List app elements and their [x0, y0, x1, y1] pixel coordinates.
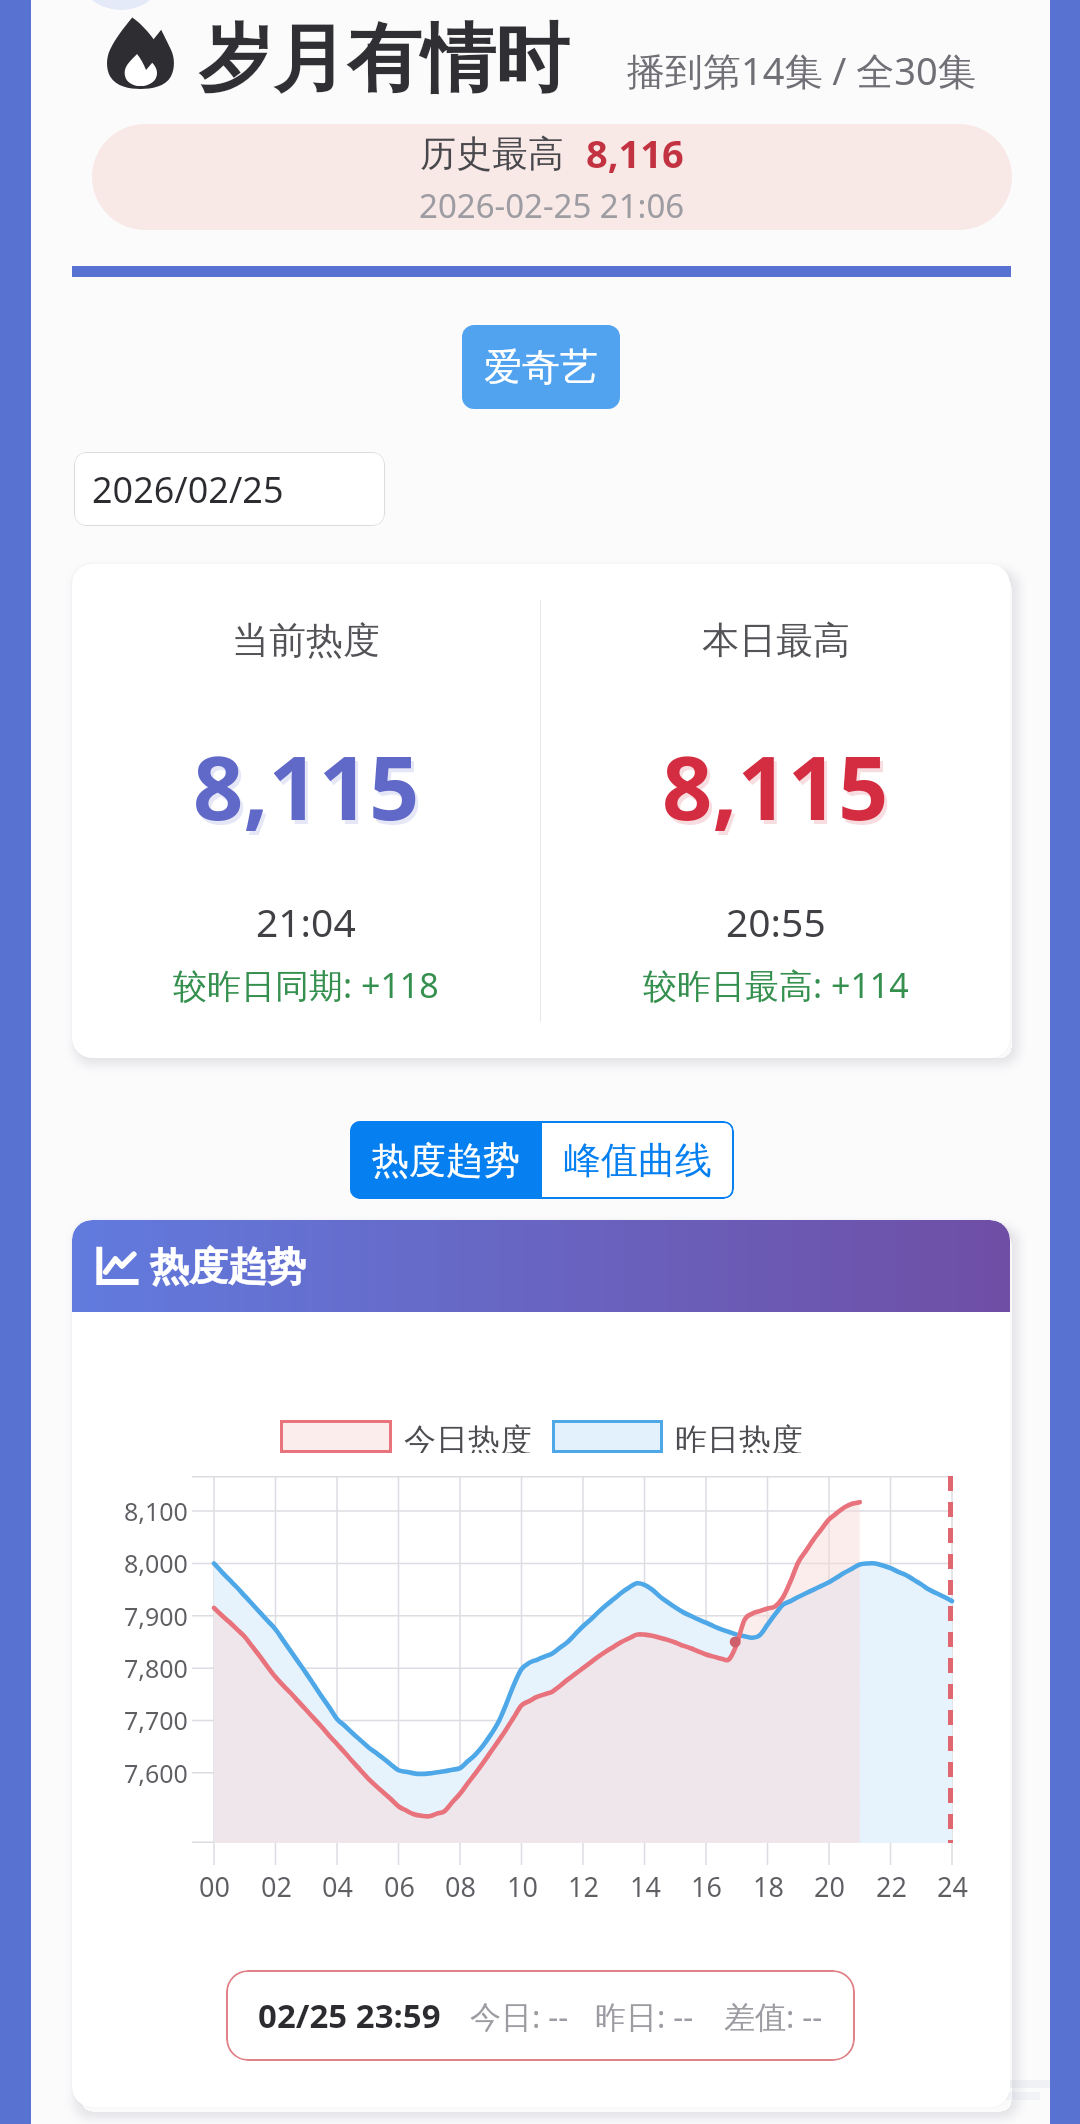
staticText: 20	[814, 1868, 845, 1904]
button[interactable]: 昨日热度	[552, 1420, 803, 1453]
staticText: 18	[753, 1868, 784, 1904]
button[interactable]: 今日热度	[280, 1420, 532, 1453]
staticText: 20:55	[726, 895, 826, 948]
staticText: 7,600	[124, 1756, 188, 1790]
staticText: 当前热度	[232, 617, 380, 664]
staticText: 00	[199, 1868, 230, 1904]
staticText: 8,115	[193, 726, 420, 846]
staticText: 岁月有情时	[199, 13, 569, 106]
other: 热度	[106, 16, 175, 89]
staticText: 差值: --	[724, 1995, 823, 2037]
staticText: 7,900	[124, 1599, 188, 1633]
button[interactable]: 本日最高	[541, 564, 1010, 1058]
staticText: 02	[261, 1868, 292, 1904]
staticText: 本日最高	[702, 617, 850, 664]
staticText: 16	[691, 1868, 722, 1904]
staticText: 昨日: --	[595, 1995, 694, 2037]
staticText: 昨日热度	[675, 1420, 803, 1453]
staticText: 热度趋势	[372, 1137, 520, 1184]
button[interactable]: 当前热度	[72, 564, 540, 1058]
staticText: 较昨日同期: +118	[173, 962, 439, 1008]
staticText: 7,700	[124, 1703, 188, 1737]
staticText: 24	[937, 1868, 968, 1904]
staticText: 爱奇艺	[484, 343, 598, 391]
staticText: 今日: --	[470, 1995, 569, 2037]
staticText: 08	[445, 1868, 476, 1904]
staticText: 8,115	[662, 726, 889, 846]
staticText: 8,116	[586, 127, 684, 179]
other: 趋势图	[96, 1248, 140, 1284]
staticText: 2026/02/25	[92, 465, 284, 514]
staticText: 热度趋势	[150, 1242, 306, 1291]
button[interactable]: 爱奇艺	[462, 325, 620, 409]
staticText: 8,000	[124, 1546, 188, 1580]
button[interactable]: 热度趋势	[350, 1121, 542, 1199]
button[interactable]: 2026/02/25	[74, 452, 385, 526]
button[interactable]: 02/25 23:59	[226, 1970, 855, 2061]
staticText: 7,800	[124, 1651, 188, 1685]
staticText: 2026-02-25 21:06	[419, 183, 685, 228]
staticText: 播到第14集 / 全30集	[627, 44, 976, 96]
staticText: 22	[876, 1868, 907, 1904]
staticText: 12	[568, 1868, 599, 1904]
staticText: 峰值曲线	[564, 1137, 712, 1184]
staticText: 8,115	[196, 730, 423, 850]
staticText: 8,100	[124, 1494, 188, 1528]
staticText: 14	[630, 1868, 661, 1904]
staticText: 今日热度	[404, 1420, 532, 1453]
staticText: 06	[384, 1868, 415, 1904]
staticText: 较昨日最高: +114	[643, 962, 909, 1008]
staticText: 02/25 23:59	[258, 1993, 441, 2038]
staticText: 21:04	[256, 895, 356, 948]
staticText: 04	[322, 1868, 353, 1904]
staticText: 历史最高	[420, 131, 564, 176]
staticText: 8,115	[665, 730, 892, 850]
button[interactable]: 峰值曲线	[542, 1121, 734, 1199]
staticText: 10	[507, 1868, 538, 1904]
